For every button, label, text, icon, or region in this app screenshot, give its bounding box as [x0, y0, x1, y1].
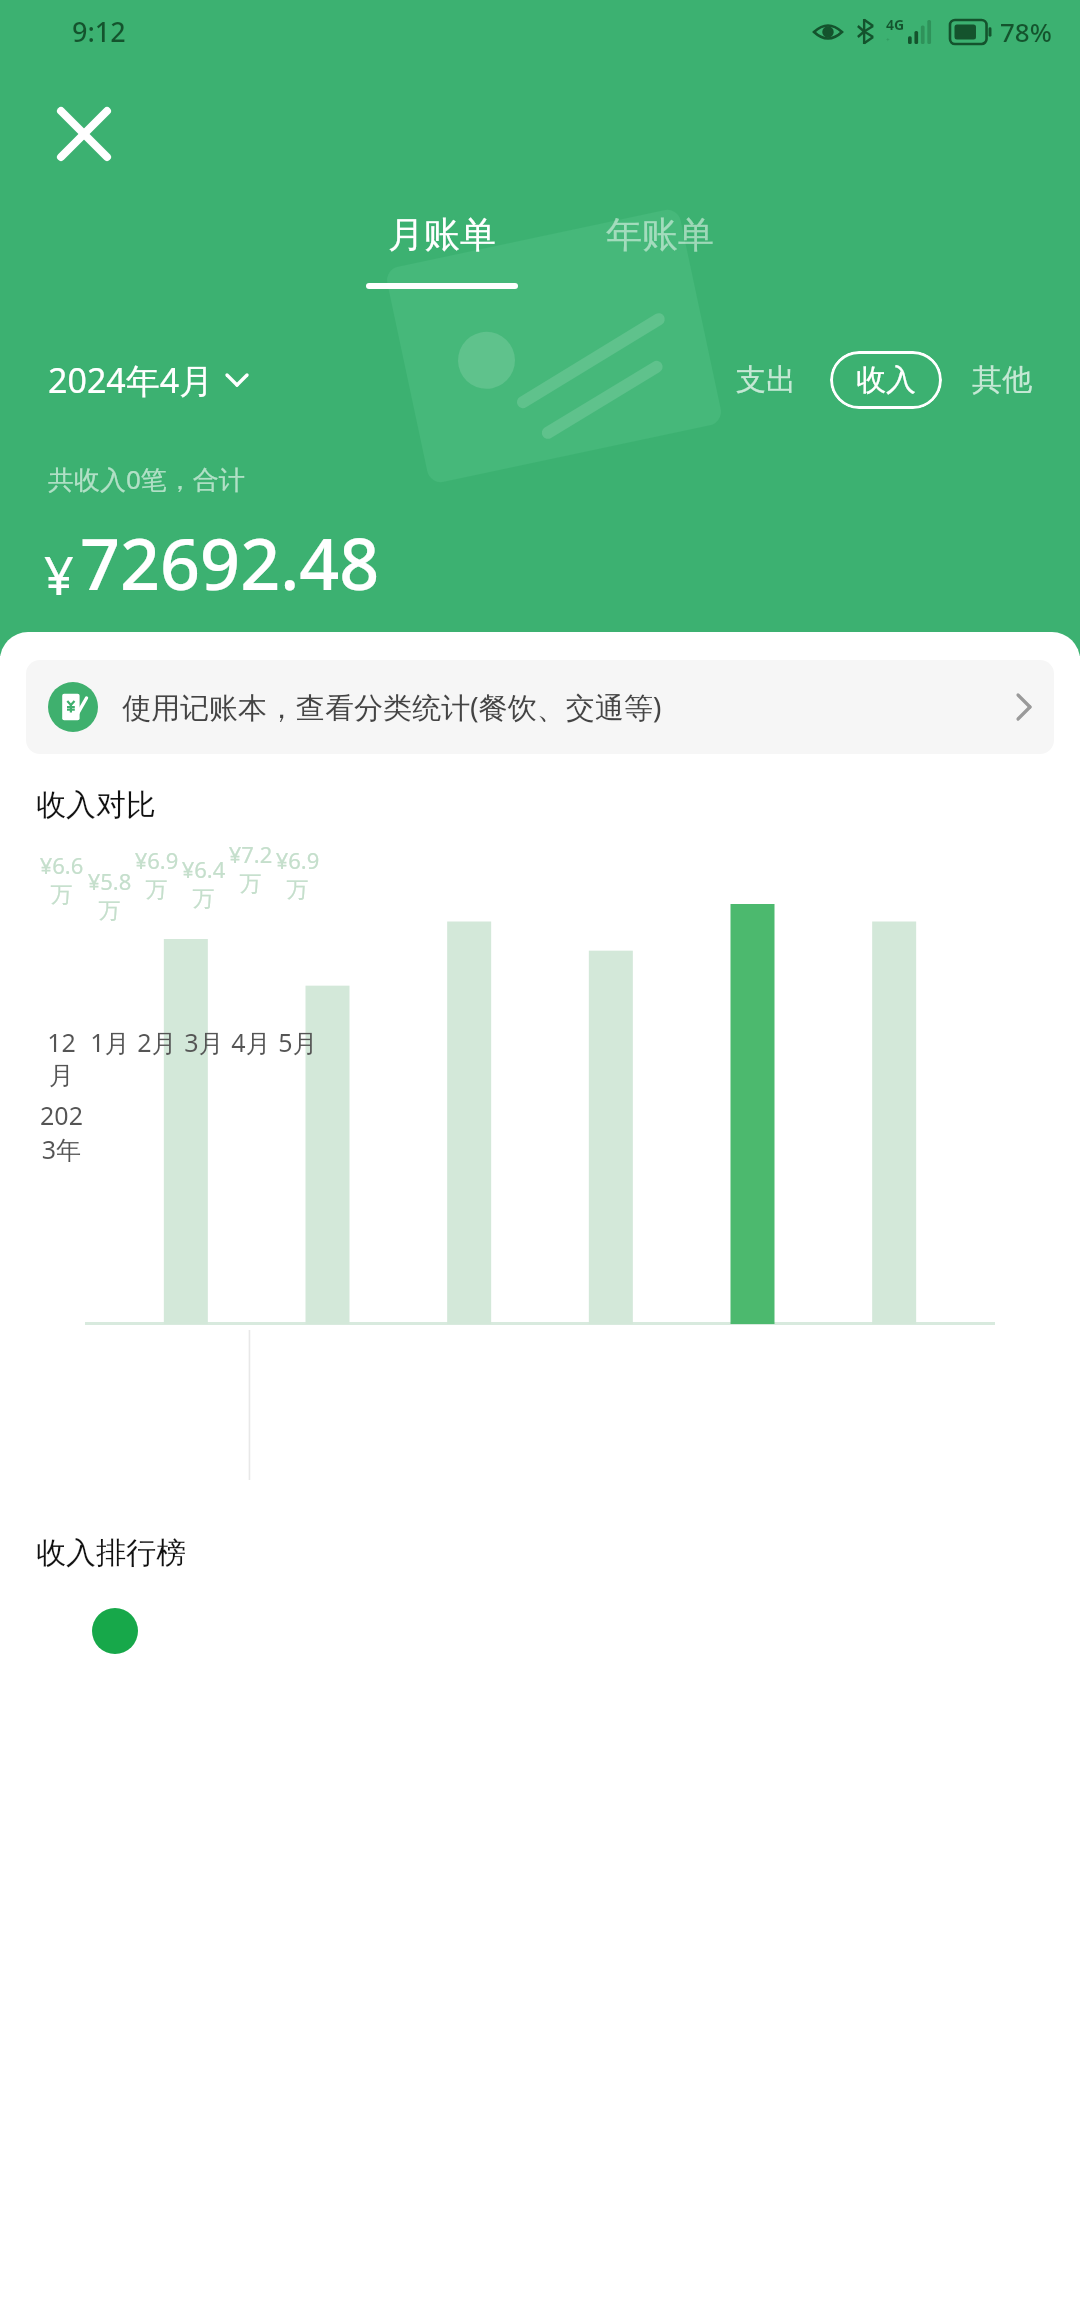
staticText: ¥5.8万	[86, 866, 133, 925]
staticText: ¥6.6万	[38, 850, 85, 909]
staticText: ¥6.9万	[274, 845, 321, 904]
staticText: 收入	[856, 361, 916, 399]
staticText: 2024年4月	[48, 357, 214, 403]
staticText: 4G	[886, 15, 905, 34]
staticText: ¥6.9万	[133, 845, 180, 904]
staticText: 12月	[38, 1025, 85, 1092]
button[interactable]: 其他	[966, 353, 1038, 407]
button[interactable]: 年账单	[590, 212, 730, 257]
staticText: 使用记账本，查看分类统计(餐饮、交通等)	[122, 687, 662, 727]
button[interactable]: Close	[40, 90, 128, 178]
staticText: 其他	[972, 361, 1032, 399]
staticText: 3月	[184, 1025, 224, 1059]
staticText: 1月	[90, 1025, 130, 1059]
button[interactable]: 月账单	[350, 212, 534, 289]
staticText: 2月	[137, 1025, 177, 1059]
staticText: ¥6.4万	[180, 854, 227, 913]
staticText: 收入对比	[36, 786, 156, 824]
staticText: 9:12	[72, 13, 126, 50]
staticText: 支出	[736, 361, 796, 399]
button[interactable]: 支出	[726, 353, 806, 407]
button[interactable]: 2024年4月	[48, 357, 248, 403]
staticText: 收入排行榜	[36, 1534, 186, 1572]
staticText: 共收入0笔，合计	[48, 461, 245, 497]
staticText: 2023年	[38, 1098, 85, 1166]
button[interactable]: 使用记账本，查看分类统计(餐饮、交通等)	[26, 660, 1054, 754]
button[interactable]: 收入	[830, 351, 942, 409]
staticText: ¥	[44, 539, 74, 610]
staticText: ¥7.2万	[227, 839, 274, 898]
staticText: ⁺	[886, 34, 890, 49]
staticText: 72692.48	[80, 515, 380, 610]
staticText: 78%	[1000, 14, 1052, 49]
staticText: 5月	[278, 1025, 318, 1059]
staticText: 4月	[231, 1025, 271, 1059]
staticText: 月账单	[388, 212, 496, 257]
staticText: 年账单	[606, 212, 714, 257]
